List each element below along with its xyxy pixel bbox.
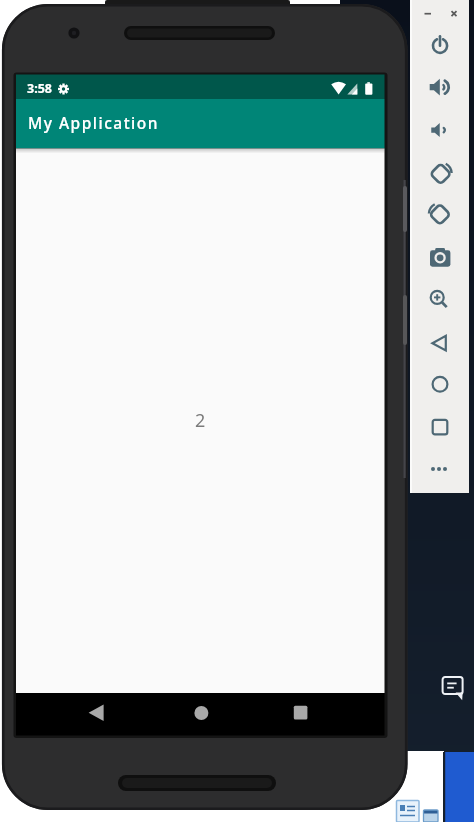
button[interactable] — [424, 156, 456, 188]
button[interactable] — [424, 285, 456, 317]
button[interactable] — [70, 693, 130, 736]
button[interactable] — [424, 29, 456, 61]
button[interactable] — [424, 71, 456, 103]
button[interactable] — [171, 693, 231, 736]
button[interactable] — [424, 327, 456, 359]
button[interactable] — [270, 693, 330, 736]
button[interactable] — [424, 197, 456, 229]
button[interactable] — [424, 241, 456, 273]
button[interactable] — [424, 411, 456, 443]
staticText: 3:58 — [27, 80, 52, 97]
button[interactable] — [438, 672, 468, 704]
staticText: 2 — [195, 408, 206, 433]
button[interactable] — [424, 368, 456, 400]
button[interactable] — [424, 114, 456, 146]
staticText: My Application — [28, 112, 159, 133]
button[interactable] — [424, 446, 456, 478]
